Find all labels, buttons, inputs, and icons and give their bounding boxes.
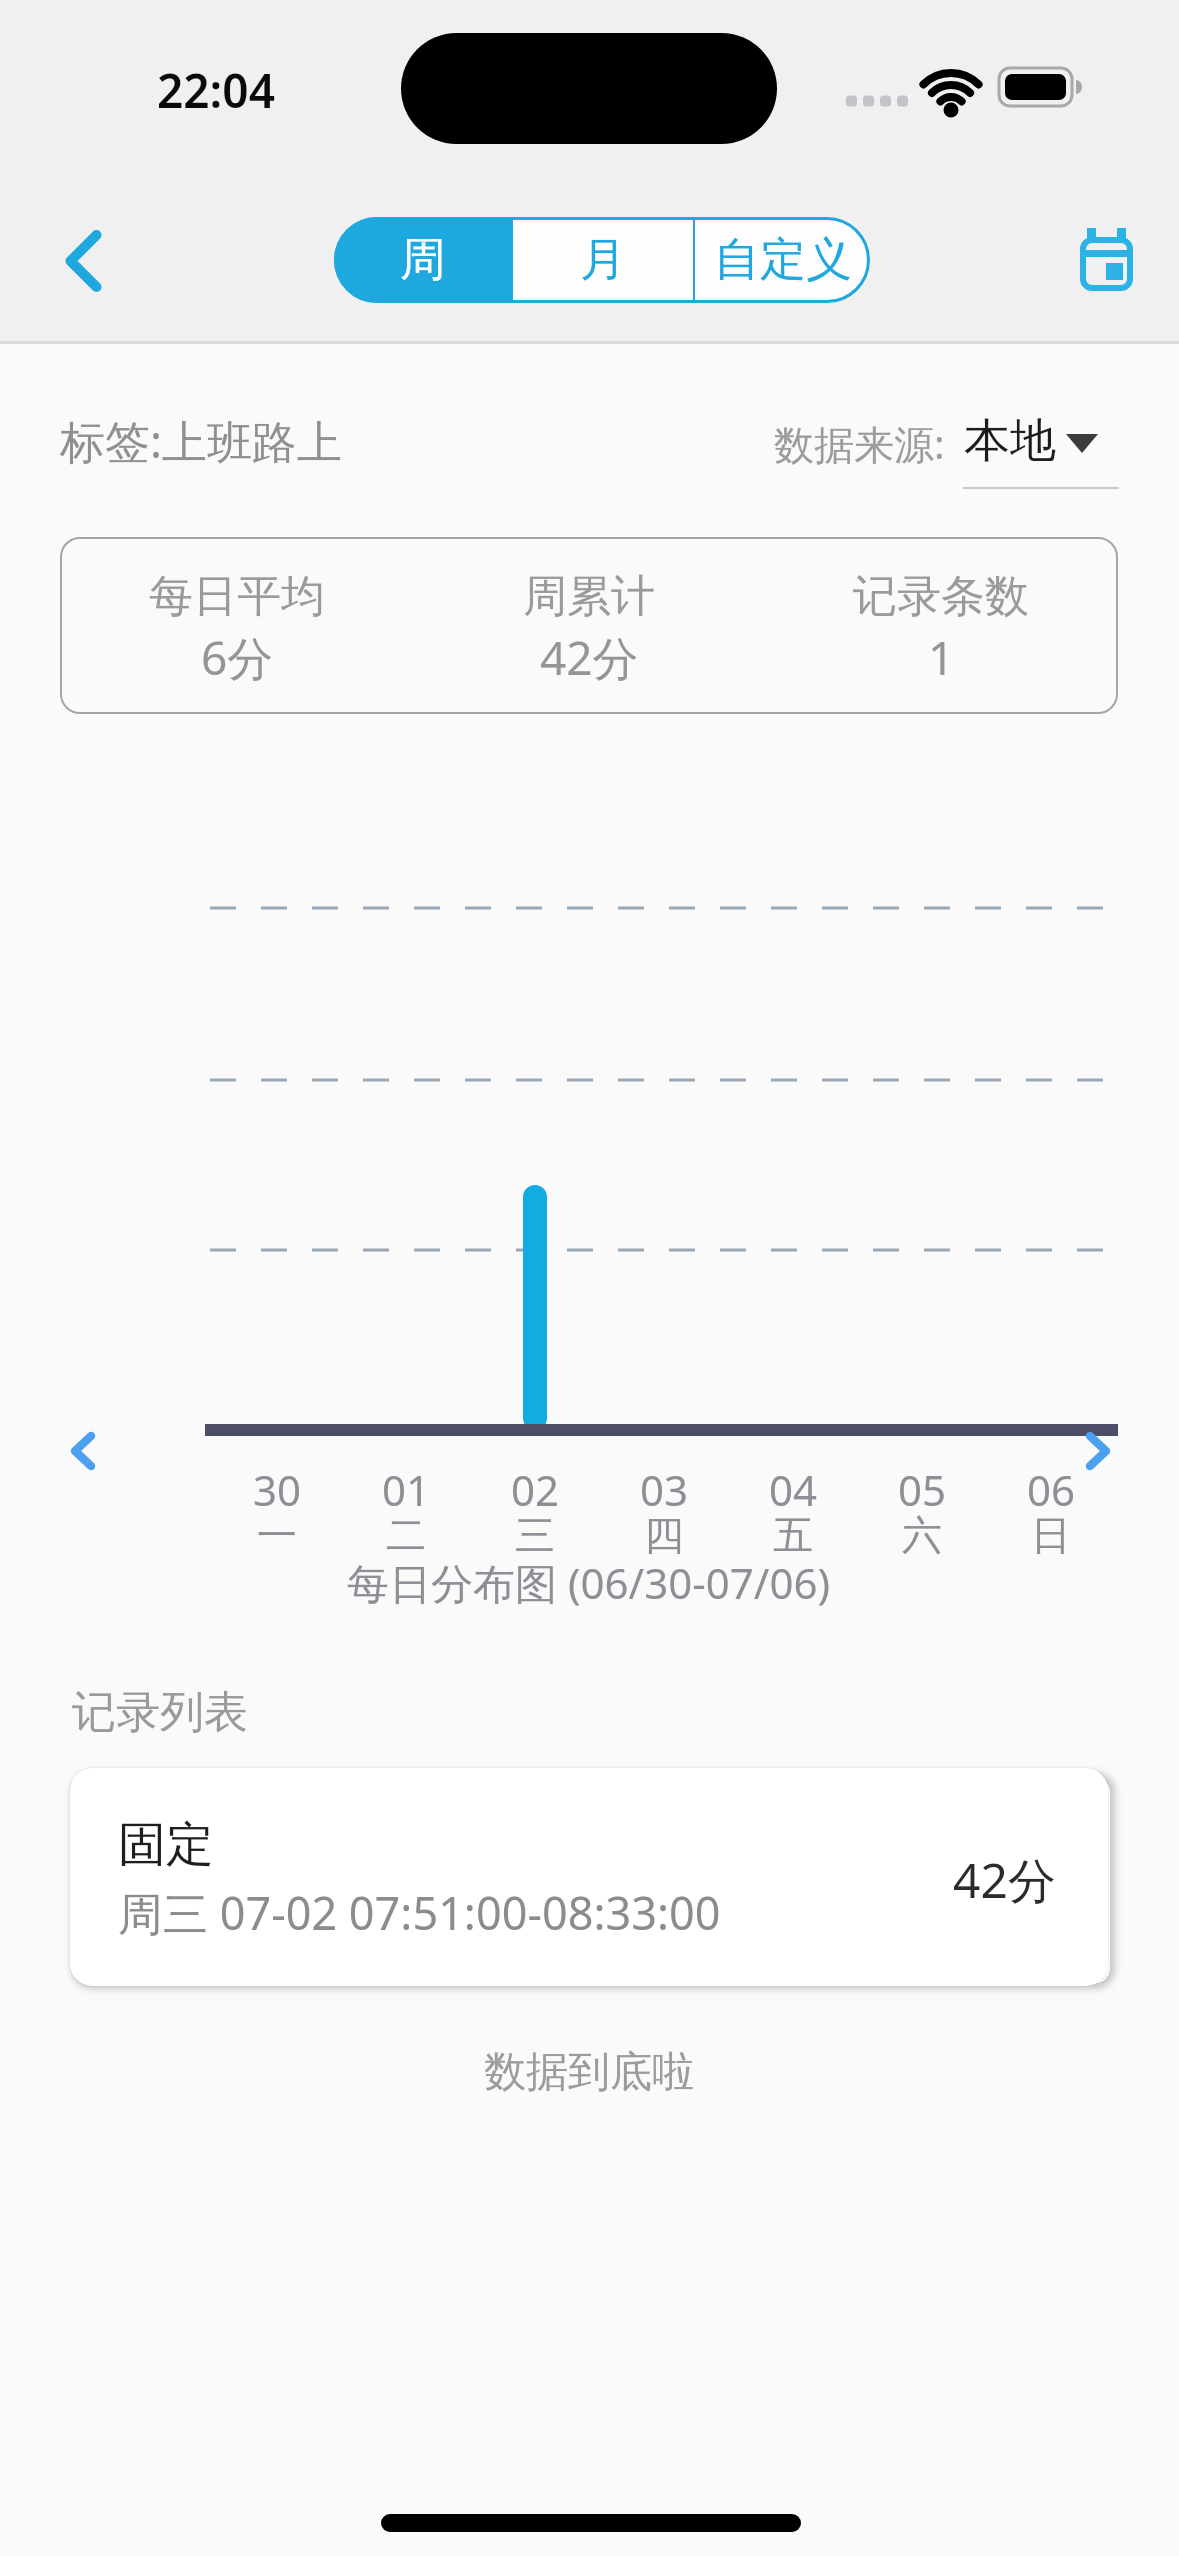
staticText: 一 [257,1510,297,1560]
staticText: 数据到底啦 [484,2046,694,2099]
staticText: 日 [1031,1510,1071,1560]
staticText: 22:04 [157,59,275,122]
button[interactable]: 固定 [70,1768,1108,1986]
staticText: 记录条数 [853,569,1029,624]
staticText: 六 [902,1510,942,1560]
staticText: 四 [644,1510,684,1560]
staticText: 每日分布图 (06/30-07/06) [347,1554,831,1611]
staticText: 自定义 [714,231,852,289]
button[interactable] [1060,1416,1130,1486]
staticText: 记录列表 [72,1685,248,1740]
staticText: 42分 [953,1847,1056,1913]
staticText: 30 [253,1461,302,1518]
button[interactable] [40,210,140,310]
button[interactable]: 月 [513,217,693,303]
staticText: 本地 [964,412,1056,470]
staticText: 每日平均 [149,569,325,624]
staticText: 05 [898,1461,947,1518]
staticText: 周累计 [523,569,655,624]
staticText: 06 [1027,1461,1076,1518]
staticText: 周三 07-02 07:51:00-08:33:00 [118,1882,721,1943]
staticText: 标签:上班路上 [60,410,343,471]
button[interactable]: 周 [334,217,511,303]
staticText: 6分 [201,626,274,689]
staticText: 三 [515,1510,555,1560]
staticText: 固定 [118,1815,214,1875]
staticText: 月 [580,231,626,289]
staticText: 五 [773,1510,813,1560]
staticText: 42分 [540,626,639,689]
button[interactable]: 自定义 [695,217,870,303]
staticText: 04 [769,1461,818,1518]
staticText: 01 [382,1461,431,1518]
staticText: 1 [928,626,955,689]
staticText: 数据来源: [774,416,945,471]
staticText: 周 [400,231,446,289]
staticText: 03 [640,1461,689,1518]
button[interactable] [1065,215,1150,305]
staticText: 二 [386,1510,426,1560]
button[interactable] [50,1416,120,1486]
staticText: 02 [511,1461,560,1518]
